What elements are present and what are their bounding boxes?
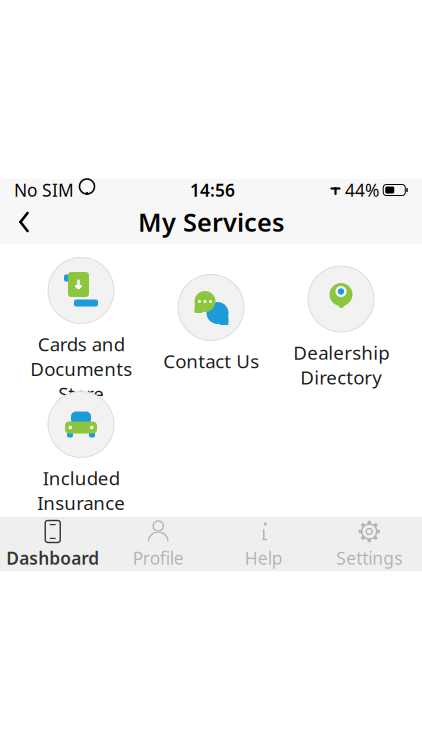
staticText: 14:56 — [190, 178, 235, 201]
button[interactable]: Help — [211, 518, 316, 571]
button[interactable]: Cards and Documents Store — [16, 257, 146, 382]
staticText: No SIM — [14, 178, 74, 201]
staticText: Included Insurance — [37, 465, 125, 515]
staticText: My Services — [138, 205, 284, 239]
button[interactable]: Dashboard — [0, 518, 105, 571]
staticText: Settings — [336, 546, 402, 569]
button[interactable]: Dealership Directory — [276, 266, 406, 374]
button[interactable]: Included Insurance — [16, 391, 146, 499]
staticText: 44% — [345, 178, 379, 201]
staticText: Dealership Directory — [293, 340, 389, 390]
button[interactable]: Settings — [316, 518, 422, 571]
staticText: Dashboard — [6, 546, 99, 569]
button[interactable]: Contact Us — [146, 274, 276, 365]
button[interactable]: Profile — [105, 518, 211, 571]
staticText: Contact Us — [163, 348, 259, 373]
staticText: Profile — [133, 546, 184, 569]
staticText: Cards and Documents Store — [30, 331, 132, 406]
button[interactable]: Back — [0, 201, 48, 243]
staticText: Help — [245, 546, 283, 569]
